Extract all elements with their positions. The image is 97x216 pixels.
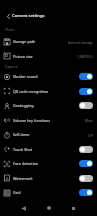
- button[interactable]: Off: [79, 175, 93, 182]
- staticText: QR code recognition: [13, 89, 49, 94]
- button[interactable]: Off: [79, 146, 93, 153]
- staticText: Storage path: [13, 39, 36, 44]
- staticText: 13MP(4:3): [77, 54, 93, 58]
- staticText: Capture: [5, 64, 18, 69]
- staticText: Grid: [13, 190, 21, 195]
- button[interactable]: Storage path: [0, 34, 97, 49]
- button[interactable]: Back: [15, 200, 31, 216]
- button[interactable]: On: [79, 73, 93, 80]
- staticText: Face detection: [13, 161, 39, 166]
- button[interactable]: Self-timer: [0, 127, 97, 142]
- button[interactable]: Home: [41, 200, 57, 216]
- staticText: Most: [85, 118, 93, 122]
- button[interactable]: Recent apps: [65, 200, 81, 216]
- button[interactable]: Picture size: [0, 49, 97, 63]
- staticText: Volume key functions: [13, 118, 51, 123]
- staticText: Geotagging: [13, 103, 34, 108]
- button[interactable]: On: [79, 189, 93, 196]
- button[interactable]: Geotagging: [0, 98, 97, 113]
- button[interactable]: Volume key functions: [0, 113, 97, 127]
- button[interactable]: Touch Shot: [0, 142, 97, 156]
- button[interactable]: Off: [79, 102, 93, 109]
- staticText: Watermark: [13, 176, 33, 181]
- staticText: Self-timer: [13, 132, 30, 137]
- button[interactable]: Face detection: [0, 156, 97, 171]
- button[interactable]: Shutter sound: [0, 69, 97, 84]
- button[interactable]: QR code recognition: [0, 84, 97, 98]
- button[interactable]: On: [79, 160, 93, 167]
- staticText: Camera settings: [12, 13, 45, 19]
- staticText: Photo: [5, 27, 15, 32]
- button[interactable]: Navigate up: [1, 9, 15, 23]
- button[interactable]: Grid: [0, 185, 97, 200]
- staticText: Picture size: [13, 54, 33, 59]
- button[interactable]: Watermark: [0, 171, 97, 185]
- button[interactable]: On: [79, 88, 93, 95]
- staticText: Touch Shot: [13, 147, 33, 152]
- staticText: Off: [88, 133, 93, 137]
- staticText: Internal storage: [68, 40, 93, 44]
- staticText: Shutter sound: [13, 74, 38, 79]
